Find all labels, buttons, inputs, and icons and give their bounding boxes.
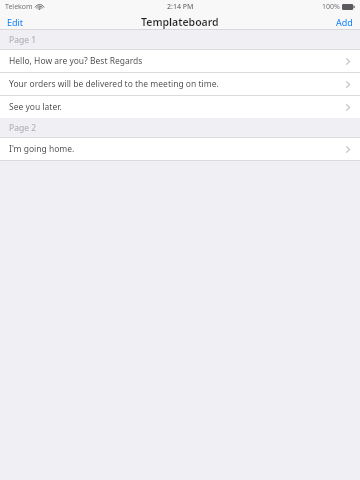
other: Open template details <box>344 145 352 153</box>
staticText: 2:14 PM <box>167 2 194 12</box>
staticText: Hello, How are you? Best Regards <box>9 55 344 67</box>
staticText: Telekom <box>5 2 33 12</box>
staticText: I'm going home. <box>9 143 344 155</box>
staticText: Templateboard <box>141 15 219 29</box>
staticText: Page 1 <box>9 34 37 46</box>
button[interactable]: Hello, How are you? Best Regards <box>0 50 360 72</box>
staticText: 100% <box>322 2 340 12</box>
button[interactable]: See you later. <box>0 96 360 118</box>
button[interactable]: I'm going home. <box>0 138 360 160</box>
staticText: Your orders will be delivered to the mee… <box>9 78 344 90</box>
other: Open template details <box>344 80 352 88</box>
other: Open template details <box>344 103 352 111</box>
other: Open template details <box>344 57 352 65</box>
staticText: Page 2 <box>9 122 37 134</box>
staticText: See you later. <box>9 101 344 113</box>
staticText: Edit <box>7 16 24 28</box>
button[interactable]: Add <box>329 14 360 30</box>
button[interactable]: Edit <box>0 14 31 30</box>
button[interactable]: Your orders will be delivered to the mee… <box>0 73 360 95</box>
staticText: Add <box>336 16 353 28</box>
